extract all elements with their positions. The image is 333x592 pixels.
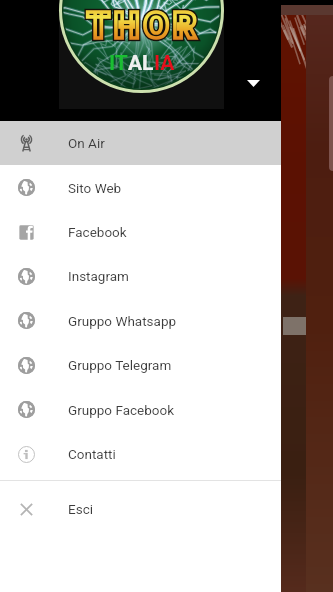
- staticText: IT: [109, 51, 128, 76]
- staticText: Sito Web: [68, 180, 122, 196]
- staticText: Gruppo Telegram: [68, 357, 172, 373]
- button[interactable]: On Air: [0, 121, 281, 165]
- button[interactable]: Instagram: [0, 254, 281, 298]
- staticText: On Air: [68, 135, 105, 151]
- button[interactable]: Facebook: [0, 210, 281, 254]
- button[interactable]: Gruppo Whatsapp: [0, 298, 281, 343]
- staticText: Esci: [68, 501, 93, 517]
- staticText: Gruppo Whatsapp: [68, 313, 177, 329]
- staticText: Gruppo Facebook: [68, 402, 175, 418]
- button[interactable]: Gruppo Facebook: [0, 387, 281, 432]
- button[interactable]: THOR: [0, 0, 281, 121]
- staticText: Instagram: [68, 268, 129, 284]
- button[interactable]: Show account list: [240, 70, 266, 96]
- staticText: THOR: [87, 5, 201, 47]
- staticText: THOR: [87, 5, 201, 47]
- button[interactable]: Gruppo Telegram: [0, 343, 281, 387]
- staticText: Contatti: [68, 446, 116, 462]
- staticText: Facebook: [68, 224, 127, 240]
- button[interactable]: Esci: [0, 487, 281, 531]
- button[interactable]: Contatti: [0, 432, 281, 476]
- staticText: AL: [128, 51, 154, 76]
- button[interactable]: Sito Web: [0, 165, 281, 210]
- staticText: IA: [154, 51, 175, 76]
